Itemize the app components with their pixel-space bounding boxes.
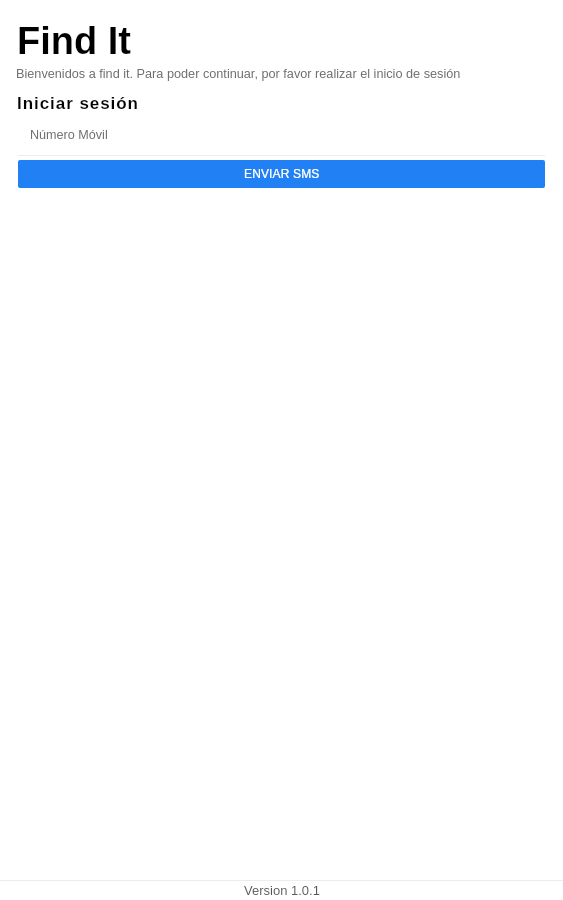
staticText: ENVIAR SMS bbox=[244, 167, 320, 180]
button[interactable]: ENVIAR SMS bbox=[18, 160, 545, 188]
button[interactable]: Número Móvil bbox=[18, 122, 545, 155]
staticText: Número Móvil bbox=[30, 128, 108, 142]
staticText: Version 1.0.1 bbox=[244, 883, 320, 898]
staticText: Find It bbox=[17, 20, 131, 62]
staticText: Iniciar sesión bbox=[17, 94, 139, 113]
staticText: Bienvenidos a find it. Para poder contin… bbox=[16, 67, 461, 81]
